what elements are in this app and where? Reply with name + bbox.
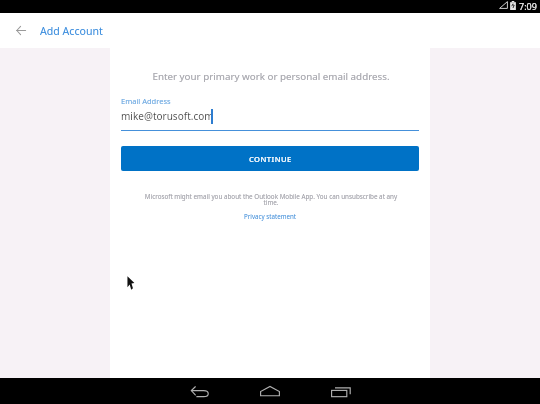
button[interactable]: CONTINUE xyxy=(121,146,419,171)
staticText: Privacy statement xyxy=(244,212,296,220)
staticText: mike@torusoft.com xyxy=(121,109,214,123)
staticText: 7:09 xyxy=(519,0,537,12)
button[interactable]: Recent apps xyxy=(319,378,363,404)
staticText: Enter your primary work or personal emai… xyxy=(111,70,431,83)
staticText: Add Account xyxy=(40,24,103,38)
staticText: CONTINUE xyxy=(249,154,292,164)
staticText: Microsoft might email you about the Outl… xyxy=(142,192,400,207)
button[interactable]: Add Account xyxy=(40,18,103,44)
button[interactable]: Back xyxy=(8,17,34,43)
button[interactable]: Home xyxy=(248,378,292,404)
staticText: Email Address xyxy=(121,96,171,106)
button[interactable]: Privacy statement xyxy=(240,211,300,221)
button[interactable]: Back xyxy=(178,378,222,404)
